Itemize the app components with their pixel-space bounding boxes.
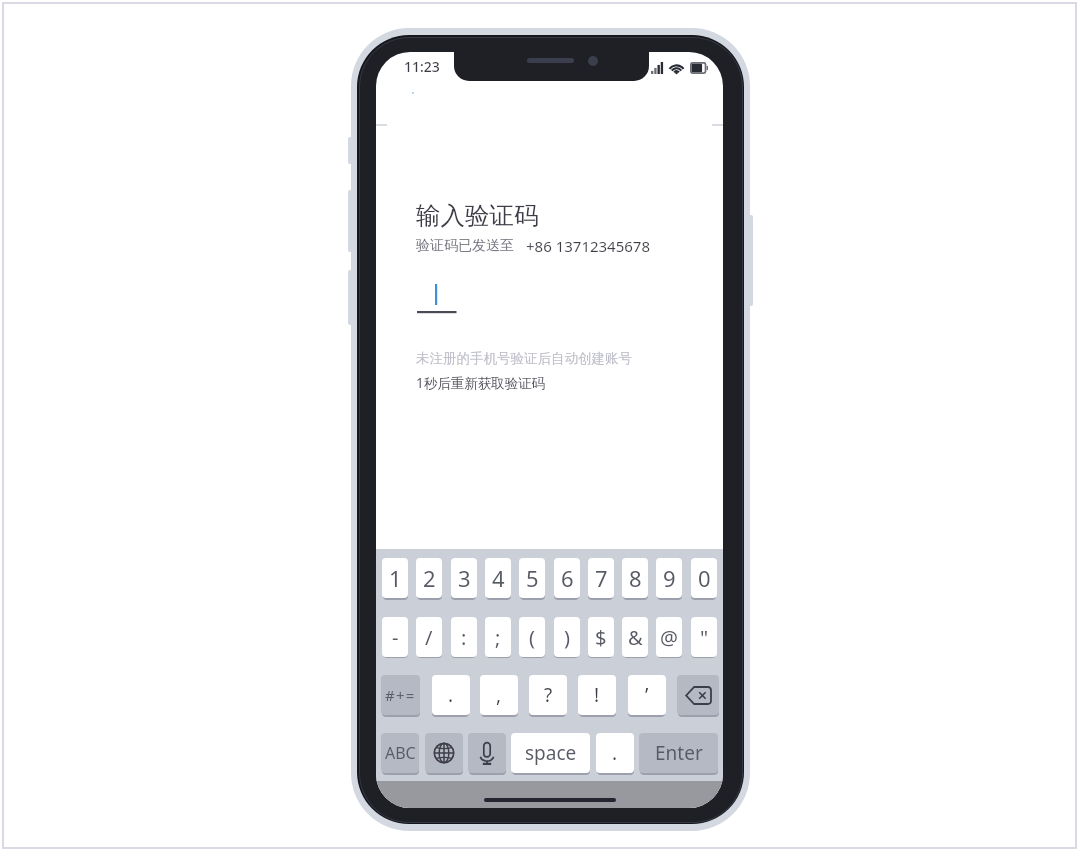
- button[interactable]: !: [578, 675, 616, 715]
- staticText: @: [660, 624, 678, 651]
- button[interactable]: (: [519, 617, 545, 657]
- staticText: #+=: [385, 685, 416, 705]
- staticText: -: [392, 624, 399, 651]
- button[interactable]: 0: [691, 558, 717, 598]
- staticText: 9: [663, 563, 676, 593]
- button[interactable]: .: [596, 733, 634, 773]
- staticText: !: [594, 682, 600, 708]
- staticText: space: [525, 740, 577, 766]
- staticText: 5: [526, 563, 539, 593]
- staticText: ,: [496, 682, 502, 708]
- staticText: 输入验证码: [416, 200, 539, 231]
- button[interactable]: #+=: [381, 675, 420, 715]
- button[interactable]: /: [416, 617, 442, 657]
- staticText: :: [461, 624, 467, 651]
- staticText: 6: [561, 563, 574, 593]
- staticText: Enter: [655, 740, 703, 766]
- button[interactable]: :: [451, 617, 477, 657]
- button[interactable]: &: [622, 617, 648, 657]
- staticText: ": [700, 624, 709, 651]
- button[interactable]: ;: [485, 617, 511, 657]
- staticText: 1秒后重新获取验证码: [416, 374, 546, 392]
- button[interactable]: -: [382, 617, 408, 657]
- button[interactable]: ": [691, 617, 717, 657]
- staticText: ABC: [385, 742, 416, 764]
- button[interactable]: @: [656, 617, 682, 657]
- staticText: 未注册的手机号验证后自动创建账号: [416, 350, 632, 367]
- button[interactable]: ?: [529, 675, 567, 715]
- staticText: 1: [389, 563, 402, 593]
- staticText: &: [628, 624, 643, 651]
- staticText: .: [612, 740, 618, 766]
- staticText: 0: [698, 563, 711, 593]
- staticText: $: [595, 624, 607, 651]
- staticText: 验证码已发送至: [416, 237, 514, 255]
- button[interactable]: space: [511, 733, 590, 773]
- staticText: ): [564, 624, 570, 651]
- staticText: 3: [458, 563, 471, 593]
- button[interactable]: 7: [588, 558, 614, 598]
- staticText: (: [529, 624, 535, 651]
- staticText: .: [448, 682, 454, 708]
- button[interactable]: 9: [656, 558, 682, 598]
- button[interactable]: 5: [519, 558, 545, 598]
- button[interactable]: 1秒后重新获取验证码: [416, 374, 546, 392]
- staticText: 2: [423, 563, 436, 593]
- button[interactable]: 2: [416, 558, 442, 598]
- button[interactable]: 6: [554, 558, 580, 598]
- button[interactable]: ): [554, 617, 580, 657]
- button[interactable]: 8: [622, 558, 648, 598]
- staticText: 4: [492, 563, 505, 593]
- button[interactable]: .: [432, 675, 470, 715]
- staticText: 8: [629, 563, 642, 593]
- staticText: ;: [495, 624, 501, 651]
- staticText: 7: [595, 563, 608, 593]
- staticText: +86 13712345678: [526, 236, 651, 256]
- button[interactable]: 3: [451, 558, 477, 598]
- staticText: /: [425, 624, 433, 651]
- button[interactable]: Enter: [639, 733, 718, 773]
- button[interactable]: Switch keyboard: [425, 733, 463, 773]
- button[interactable]: 4: [485, 558, 511, 598]
- button[interactable]: Verification code input: [416, 282, 458, 314]
- button[interactable]: Backspace: [677, 675, 719, 715]
- button[interactable]: $: [588, 617, 614, 657]
- button[interactable]: Voice input: [468, 733, 506, 773]
- button[interactable]: 1: [382, 558, 408, 598]
- staticText: ?: [544, 682, 553, 708]
- staticText: ’: [645, 682, 649, 708]
- button[interactable]: ABC: [381, 733, 419, 773]
- button[interactable]: ,: [480, 675, 518, 715]
- button[interactable]: ’: [628, 675, 666, 715]
- staticText: 11:23: [404, 57, 440, 76]
